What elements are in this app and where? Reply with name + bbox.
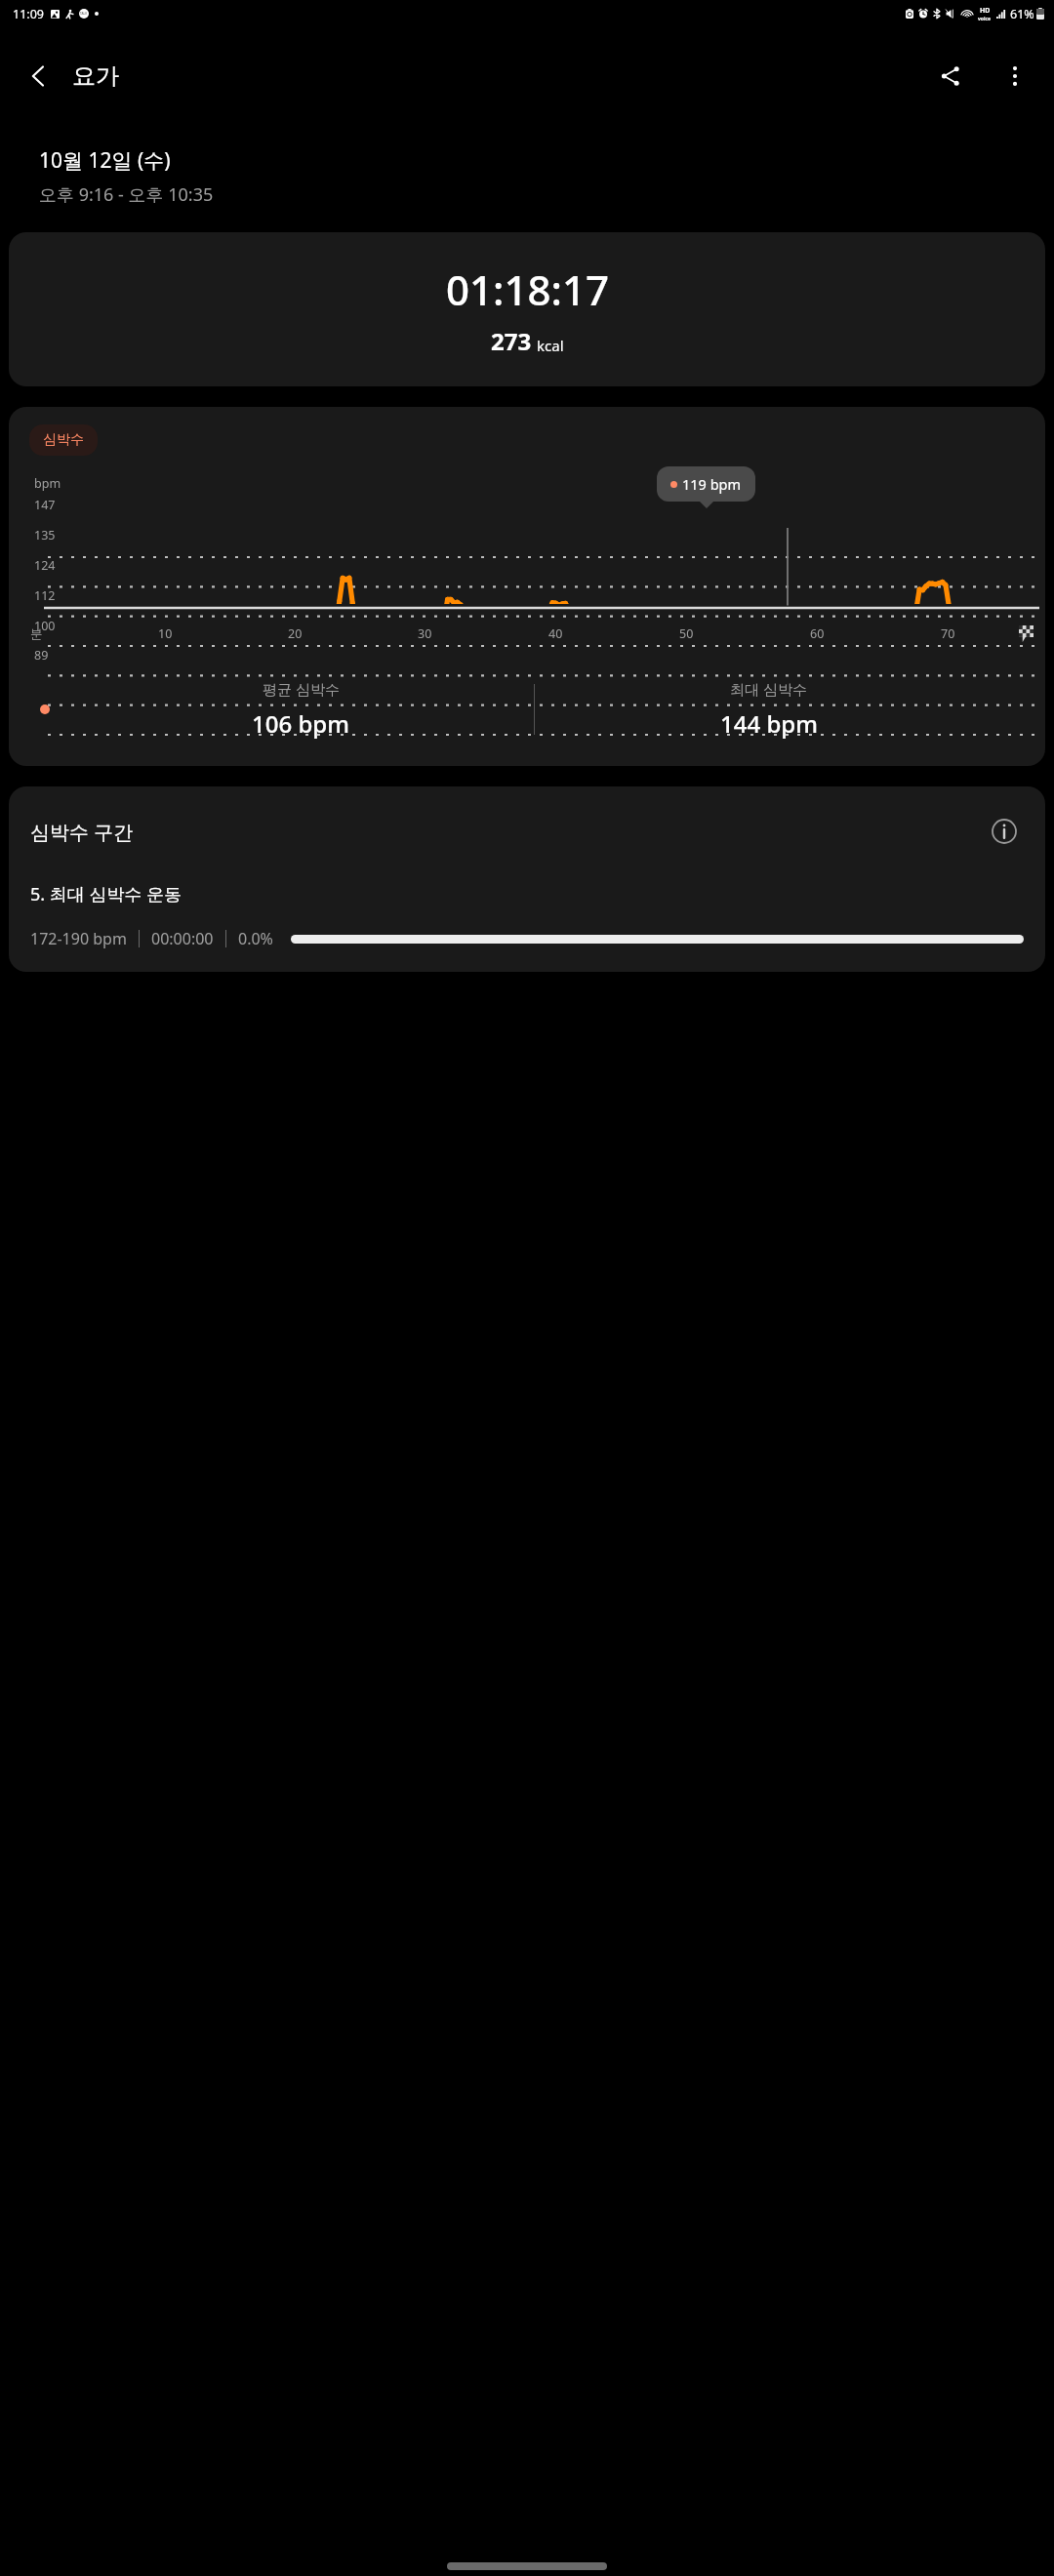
- staticText: 11:09: [13, 6, 44, 22]
- staticText: 135: [34, 527, 56, 543]
- staticText: 00:00:00: [151, 928, 214, 949]
- staticText: 100: [34, 618, 56, 634]
- staticText: 147: [34, 497, 56, 513]
- staticText: 119 bpm: [682, 474, 742, 494]
- staticText: voice: [978, 16, 992, 22]
- button[interactable]: Information: [985, 812, 1024, 851]
- staticText: 124: [34, 557, 56, 574]
- button[interactable]: 심박수: [29, 424, 98, 456]
- staticText: 40: [548, 625, 563, 642]
- staticText: 10월 12일 (수): [39, 146, 171, 175]
- staticText: 30: [418, 625, 432, 642]
- staticText: 112: [34, 587, 56, 604]
- staticText: 60: [810, 625, 825, 642]
- staticText: 89: [34, 647, 49, 664]
- staticText: 요가: [72, 61, 119, 91]
- button[interactable]: 심박수 구간: [9, 786, 1045, 972]
- button[interactable]: More options: [988, 49, 1042, 103]
- button[interactable]: 01:18:17: [9, 232, 1045, 386]
- staticText: 평균 심박수: [263, 679, 340, 699]
- staticText: 심박수 구간: [30, 819, 134, 845]
- staticText: 106 bpm: [252, 707, 349, 740]
- button[interactable]: Share: [923, 49, 978, 103]
- staticText: 50: [679, 625, 694, 642]
- staticText: 273: [491, 325, 532, 357]
- staticText: 01:18:17: [446, 262, 609, 317]
- staticText: kcal: [537, 336, 564, 355]
- staticText: 144 bpm: [720, 707, 818, 740]
- staticText: 61%: [1010, 6, 1034, 22]
- button[interactable]: Back: [12, 49, 66, 103]
- staticText: 5. 최대 심박수 운동: [30, 882, 182, 906]
- button[interactable]: 119 bpm: [657, 466, 755, 502]
- staticText: 20: [288, 625, 303, 642]
- staticText: 70: [941, 625, 955, 642]
- staticText: 최대 심박수: [730, 679, 807, 699]
- staticText: 심박수: [43, 431, 84, 449]
- staticText: TALK: [80, 12, 88, 16]
- staticText: 오후 9:16 - 오후 10:35: [39, 182, 214, 207]
- staticText: 10: [158, 625, 173, 642]
- staticText: 0.0%: [238, 928, 273, 949]
- staticText: 분: [30, 626, 43, 642]
- staticText: 172-190 bpm: [30, 928, 127, 949]
- staticText: bpm: [34, 475, 61, 492]
- staticText: HD: [980, 6, 991, 16]
